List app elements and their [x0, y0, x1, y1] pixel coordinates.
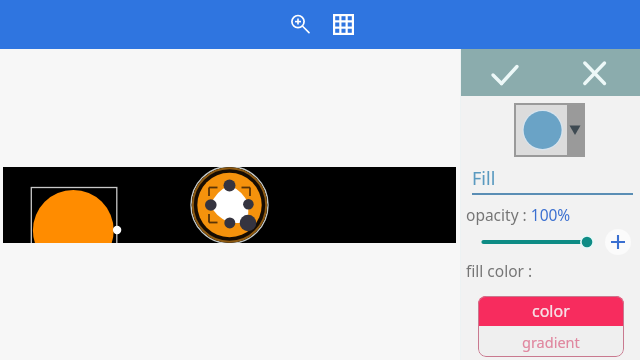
staticText: Fill	[472, 166, 496, 191]
button[interactable]: gradient	[478, 326, 624, 357]
button[interactable]: Apply	[480, 50, 525, 95]
button[interactable]: Shape style	[514, 103, 585, 157]
button[interactable]: Show grid	[320, 1, 366, 47]
staticText: color	[532, 300, 570, 322]
button[interactable]: color	[478, 296, 624, 326]
staticText: opacity : 100%	[466, 204, 571, 225]
button[interactable]: Zoom in	[277, 1, 323, 47]
staticText: fill color :	[466, 260, 533, 281]
button[interactable]: Cancel	[570, 50, 615, 95]
button[interactable]: Add colour	[605, 229, 631, 255]
staticText: gradient	[522, 332, 580, 352]
